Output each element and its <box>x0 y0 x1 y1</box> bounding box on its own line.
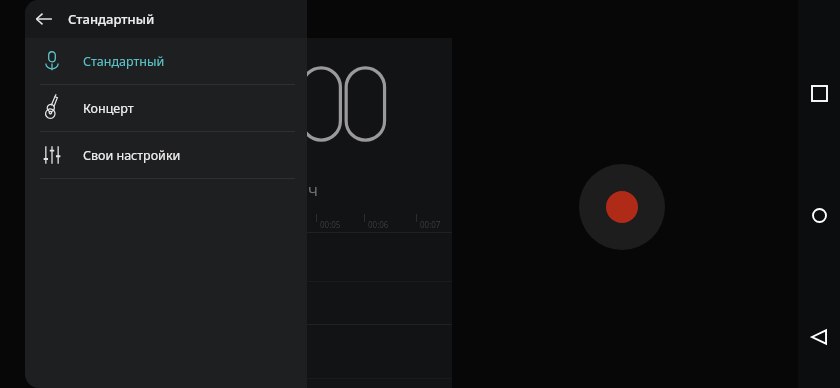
button[interactable]: Стандартный <box>25 38 307 84</box>
staticText: 00:05 <box>320 219 341 230</box>
button[interactable]: Свои настройки <box>25 132 307 178</box>
button[interactable]: Recent apps <box>798 72 840 114</box>
staticText: 00:07 <box>420 219 441 230</box>
staticText: Стандартный <box>68 10 155 28</box>
staticText: Концерт <box>83 100 134 117</box>
button[interactable]: Record <box>579 164 665 250</box>
button[interactable]: Back <box>798 316 840 358</box>
staticText: Свои настройки <box>83 147 181 164</box>
button[interactable]: Концерт <box>25 85 307 131</box>
staticText: Стандартный <box>83 53 165 70</box>
button[interactable]: Home <box>798 194 840 236</box>
staticText: 00:06 <box>368 219 389 230</box>
button[interactable]: Back <box>25 0 63 38</box>
staticText: ч <box>308 178 319 201</box>
